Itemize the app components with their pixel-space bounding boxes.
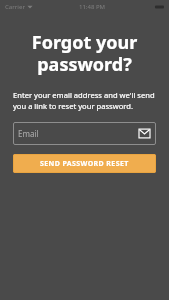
staticText: Email xyxy=(18,128,39,139)
button[interactable]: SEND PASSWORD RESET xyxy=(13,154,156,173)
staticText: Enter your email address and we'll send … xyxy=(13,90,156,111)
other: Email xyxy=(139,128,150,139)
staticText: Carrier xyxy=(5,3,25,11)
staticText: Forgot your password? xyxy=(13,30,156,77)
staticText: SEND PASSWORD RESET xyxy=(40,159,129,169)
button[interactable]: Email xyxy=(13,122,156,145)
staticText: 11:48 PM xyxy=(79,3,106,11)
